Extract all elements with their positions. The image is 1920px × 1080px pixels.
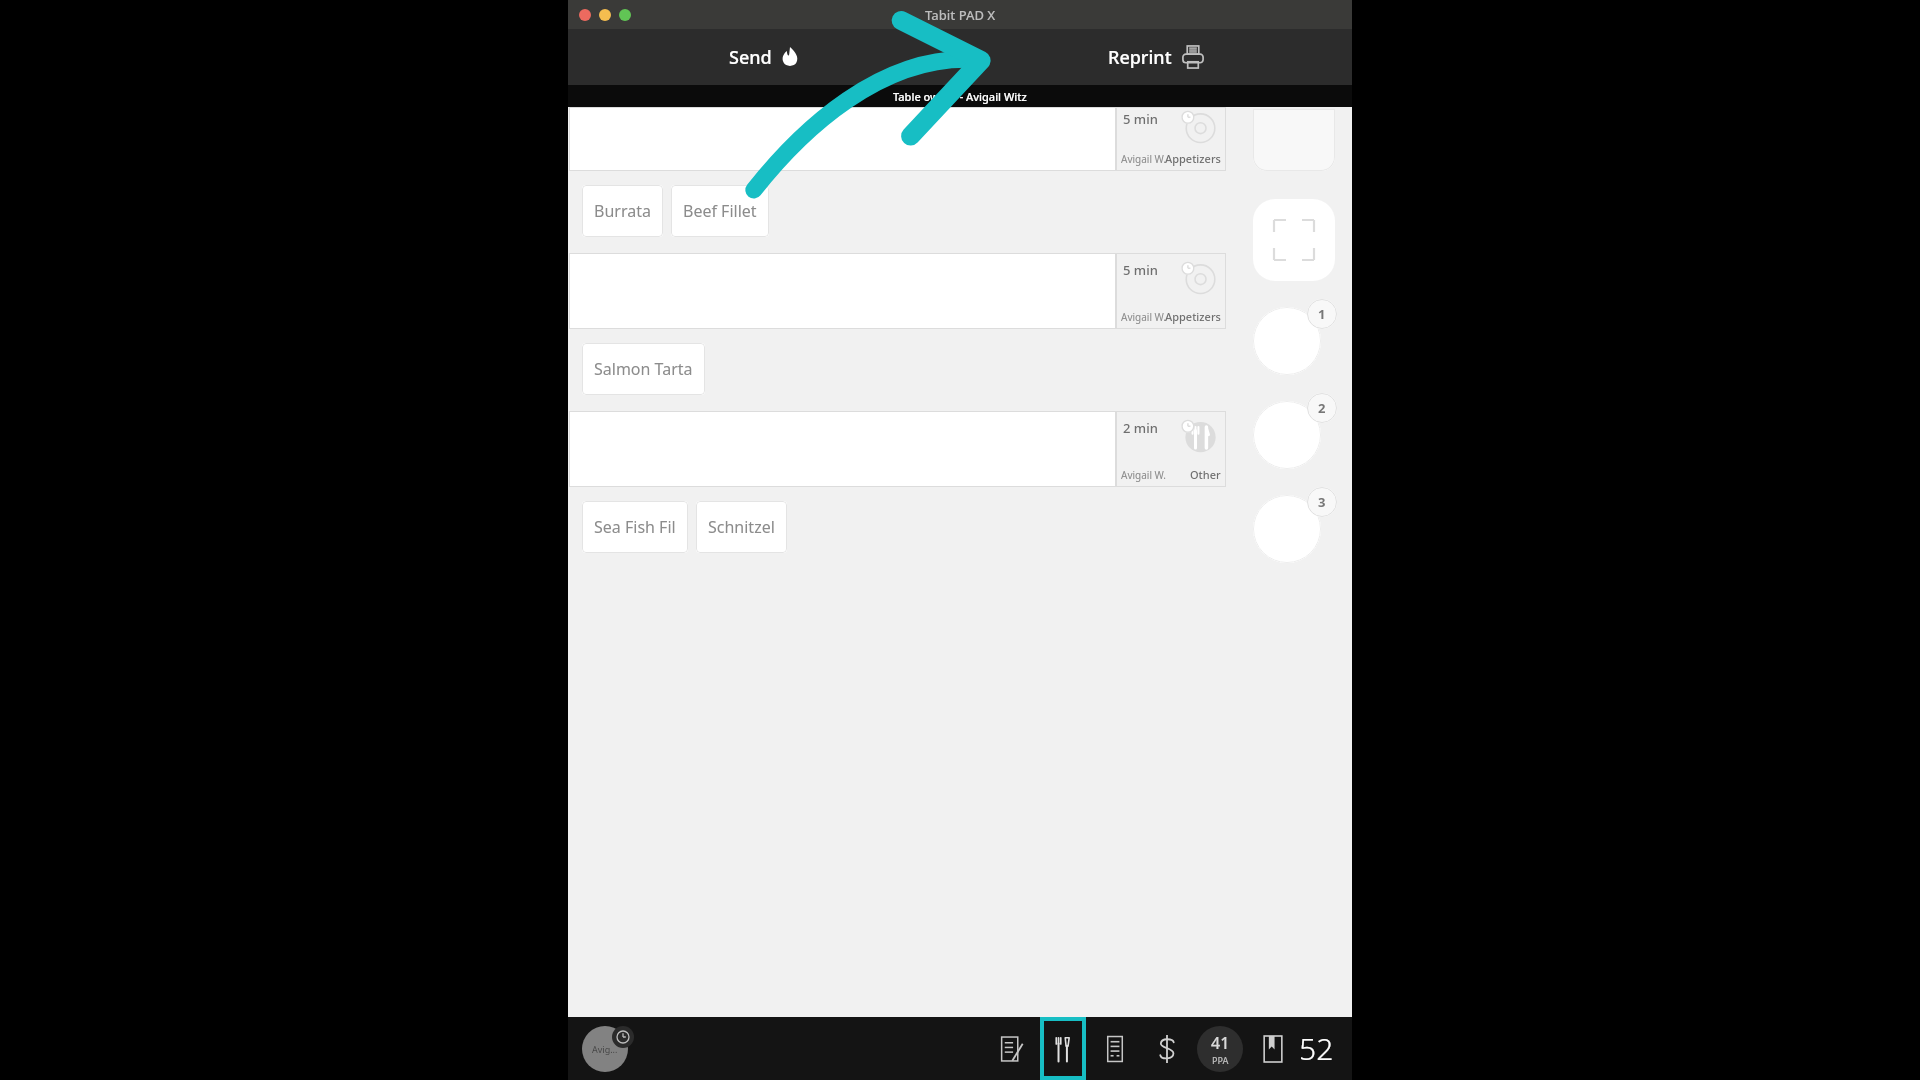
staticText: Burrata [594,200,651,222]
staticText: Avigail W. [1121,310,1167,324]
staticText: Table owner - Avigail Witz [893,89,1027,104]
staticText: 3 [1318,493,1326,511]
staticText: Avigail W. [1121,152,1167,166]
button[interactable]: Schnitzel [696,501,787,553]
staticText: Tabit PAD X [925,6,996,24]
staticText: Appetizers [1165,151,1221,166]
staticText: 41 [1211,1032,1230,1054]
button[interactable]: 2 min [569,411,1226,487]
staticText: 5 min [1123,261,1158,279]
staticText: Salmon Tarta [594,358,693,380]
staticText: 2 [1318,399,1326,417]
staticText: 5 min [1123,110,1158,128]
staticText: 2 min [1123,419,1158,437]
staticText: Beef Fillet [683,200,757,222]
button[interactable]: Menu [1040,1017,1086,1080]
button[interactable]: Order list [1092,1017,1138,1080]
button[interactable]: User Avigail [582,1026,628,1072]
button[interactable]: Burrata [582,185,663,237]
button[interactable]: Seat 2 [1253,401,1321,469]
button[interactable]: Sea Fish Fil [582,501,688,553]
button[interactable]: 5 min [569,253,1226,329]
button[interactable]: Seat 3 [1253,495,1321,563]
staticText: PPA [1212,1054,1229,1066]
staticText: 1 [1318,305,1326,323]
button[interactable]: Table [1253,109,1335,171]
staticText: Appetizers [1165,309,1221,324]
button[interactable]: Bookmark [1247,1023,1299,1075]
staticText: Schnitzel [708,516,775,538]
button[interactable]: Send [568,29,960,85]
staticText: Avig... [592,1043,618,1055]
button[interactable]: Reprint [960,29,1352,85]
button[interactable]: Beef Fillet [671,185,769,237]
button[interactable]: Select table [1253,199,1335,281]
staticText: Other [1190,467,1221,482]
staticText: Sea Fish Fil [594,516,676,538]
staticText: Send [729,45,772,70]
button[interactable]: 41 [1197,1026,1243,1072]
button[interactable]: Payment [1144,1017,1190,1080]
staticText: Avigail W. [1121,468,1167,482]
button[interactable]: Notes [988,1017,1034,1080]
button[interactable]: Salmon Tarta [582,343,705,395]
staticText: Reprint [1108,45,1172,70]
button[interactable]: 5 min [569,107,1226,171]
button[interactable]: Seat 1 [1253,307,1321,375]
staticText: 52 [1299,1028,1334,1069]
